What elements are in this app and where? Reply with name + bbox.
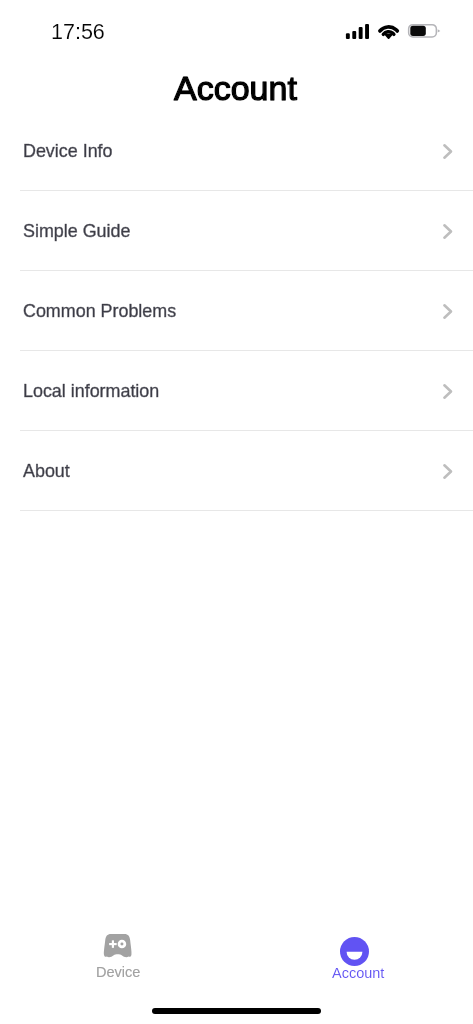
staticText: Account (174, 69, 297, 107)
staticText: About (23, 461, 70, 481)
staticText: Common Problems (23, 301, 177, 321)
staticText: Device Info (23, 141, 113, 161)
staticText: Device Info (23, 141, 113, 161)
other: Signal, Wi-Fi and battery status (344, 20, 444, 44)
staticText: Local information (23, 381, 160, 401)
other: Device (103, 933, 134, 958)
staticText: Common Problems (23, 301, 177, 321)
button[interactable]: Common Problems (0, 271, 473, 351)
button[interactable]: Local information (0, 351, 473, 431)
staticText: Local information (23, 381, 160, 401)
staticText: About (23, 461, 70, 481)
button[interactable]: Account (236, 926, 473, 1000)
button[interactable]: Device (0, 926, 236, 1000)
staticText: Account (174, 69, 297, 107)
button[interactable]: Device Info (0, 111, 473, 191)
staticText: Device (96, 964, 141, 980)
button[interactable]: Simple Guide (0, 191, 473, 271)
staticText: Simple Guide (23, 221, 131, 241)
staticText: 17:56 (51, 20, 105, 44)
staticText: Account (332, 965, 385, 981)
button[interactable]: About (0, 431, 473, 511)
staticText: Simple Guide (23, 221, 131, 241)
